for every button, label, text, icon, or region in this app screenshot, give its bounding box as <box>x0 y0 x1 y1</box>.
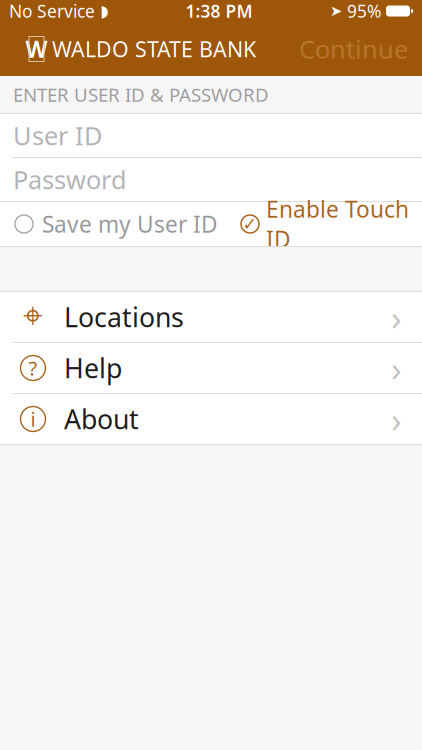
staticText: ◗ <box>100 2 108 20</box>
staticText: ➤ <box>330 3 342 19</box>
button[interactable]: i <box>0 394 422 444</box>
staticText: Continue <box>299 32 408 66</box>
button[interactable]: Continue <box>285 22 422 76</box>
staticText: Save my User ID <box>42 209 218 239</box>
button[interactable]: Save my User ID <box>0 202 218 246</box>
staticText: › <box>391 396 402 442</box>
staticText: › <box>391 345 402 391</box>
staticText: Password <box>13 163 127 196</box>
staticText: › <box>391 294 402 340</box>
staticText: Enable Touch ID <box>266 194 409 254</box>
staticText: ⌖ <box>23 300 43 334</box>
staticText: 95% <box>347 0 381 22</box>
staticText: Locations <box>64 299 184 335</box>
staticText: Help <box>64 350 122 386</box>
staticText: ? <box>28 355 37 381</box>
staticText: About <box>64 401 139 437</box>
button[interactable]: ✓ <box>241 202 422 246</box>
button[interactable]: ? <box>0 343 422 393</box>
staticText: WALDO STATE BANK <box>52 35 256 63</box>
staticText: W <box>25 34 47 64</box>
staticText: i <box>30 406 35 432</box>
staticText: 1:38 PM <box>185 0 252 22</box>
staticText: User ID <box>13 119 102 152</box>
staticText: ENTER USER ID & PASSWORD <box>13 82 269 107</box>
staticText: No Service <box>9 0 95 22</box>
button[interactable]: ⌖ <box>0 292 422 342</box>
staticText: ✓ <box>242 214 257 234</box>
